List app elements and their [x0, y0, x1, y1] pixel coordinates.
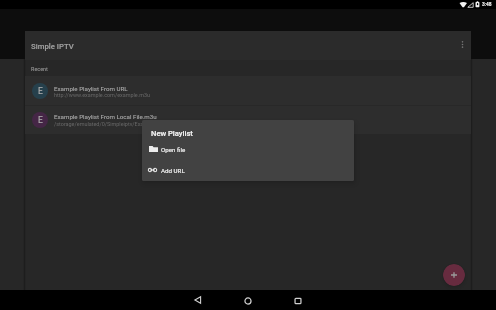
staticText: E	[38, 86, 43, 96]
staticText: New Playlist	[151, 129, 193, 138]
staticText: http://www.example.com/example.m3u	[54, 92, 150, 98]
staticText: Example Playlist From Local File.m3u	[54, 113, 157, 120]
button[interactable]: Home	[235, 291, 261, 310]
button[interactable]: Add URL	[142, 163, 354, 181]
button[interactable]: Back	[185, 290, 211, 310]
button[interactable]: More options	[454, 36, 471, 53]
staticText: Example Playlist From URL	[54, 85, 128, 92]
staticText: Simple IPTV	[31, 42, 74, 51]
staticText: Open file	[161, 146, 186, 153]
staticText: Recent	[31, 66, 48, 72]
button[interactable]: Open file	[142, 142, 354, 160]
button[interactable]: E	[25, 76, 471, 105]
staticText: /storage/emulated/0/Simpleiptv/Example P…	[54, 121, 225, 127]
staticText: E	[38, 115, 43, 125]
staticText: 3:48	[482, 1, 492, 7]
button[interactable]: E	[25, 105, 471, 134]
button[interactable]: Add playlist	[443, 264, 465, 286]
staticText: Add URL	[161, 167, 185, 174]
button[interactable]: Recent apps	[285, 291, 311, 310]
